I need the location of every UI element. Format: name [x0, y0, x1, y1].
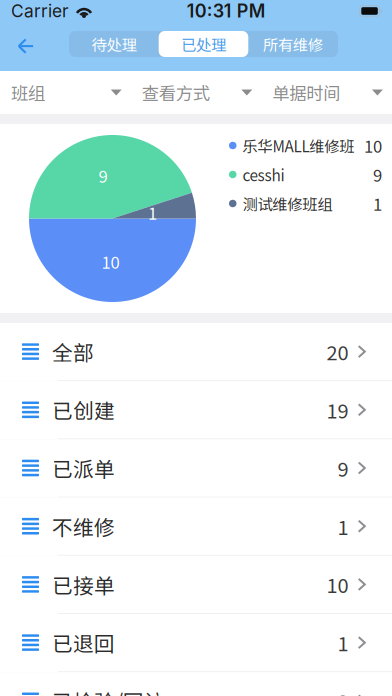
button[interactable]: 查看方式 [131, 71, 261, 114]
staticText: 1 [148, 200, 157, 224]
staticText: 3 [338, 686, 349, 696]
staticText: 班组 [11, 80, 45, 105]
button[interactable]: 已创建 [0, 381, 392, 439]
staticText: 已接单 [52, 569, 115, 599]
staticText: 查看方式 [142, 80, 210, 105]
button[interactable]: 已派单 [0, 439, 392, 498]
staticText: 10 [101, 249, 119, 273]
button[interactable]: 不维修 [0, 498, 392, 556]
staticText: 9 [98, 163, 107, 187]
staticText: Carrier [11, 0, 69, 21]
staticText: 10 [364, 133, 382, 157]
staticText: 已派单 [52, 453, 115, 483]
staticText: 全部 [52, 337, 94, 366]
button[interactable]: 所有维修 [248, 31, 338, 57]
staticText: 已检验/回访 [52, 686, 165, 696]
button[interactable]: 全部 [0, 323, 392, 381]
button[interactable]: 已接单 [0, 556, 392, 614]
button[interactable]: Back [4, 22, 48, 71]
staticText: 20 [327, 337, 349, 366]
staticText: 19 [327, 395, 349, 424]
button[interactable]: 已退回 [0, 614, 392, 672]
staticText: 不维修 [52, 511, 115, 541]
staticText: 测试维修班组 [242, 192, 332, 215]
staticText: 已退回 [52, 628, 115, 657]
staticText: 10:31 PM [187, 0, 266, 22]
staticText: 1 [338, 512, 349, 541]
button[interactable]: 已检验/回访 [0, 672, 392, 696]
staticText: 所有维修 [263, 33, 323, 55]
staticText: 9 [373, 162, 382, 186]
staticText: 已创建 [52, 395, 115, 425]
staticText: 1 [338, 628, 349, 657]
staticText: 10 [327, 570, 349, 599]
button[interactable]: 待处理 [69, 31, 159, 57]
staticText: 乐华MALL维修班 [242, 134, 354, 157]
staticText: 单据时间 [272, 80, 340, 105]
staticText: 1 [373, 191, 382, 215]
button[interactable]: 班组 [0, 71, 131, 114]
button[interactable]: 已处理 [159, 31, 248, 57]
staticText: cesshi [242, 163, 284, 186]
staticText: 9 [338, 453, 349, 482]
staticText: 待处理 [91, 33, 136, 55]
staticText: 已处理 [181, 33, 226, 55]
button[interactable]: 单据时间 [261, 71, 392, 114]
